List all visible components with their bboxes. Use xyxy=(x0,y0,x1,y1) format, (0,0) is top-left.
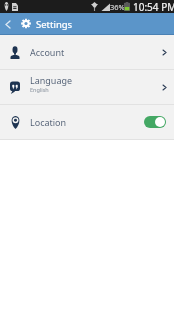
button[interactable]: Back xyxy=(0,13,15,35)
staticText: Language xyxy=(30,74,73,86)
staticText: Settings xyxy=(36,18,73,31)
button[interactable]: Location xyxy=(0,105,174,139)
staticText: 10:54 PM xyxy=(133,0,174,13)
staticText: Account xyxy=(30,46,65,58)
staticText: 36% xyxy=(110,2,125,12)
staticText: Location xyxy=(30,116,67,128)
button[interactable]: Account xyxy=(0,35,174,69)
button[interactable]: Language xyxy=(0,70,174,104)
staticText: English xyxy=(30,86,49,93)
button[interactable]: Location toggle xyxy=(144,116,166,128)
